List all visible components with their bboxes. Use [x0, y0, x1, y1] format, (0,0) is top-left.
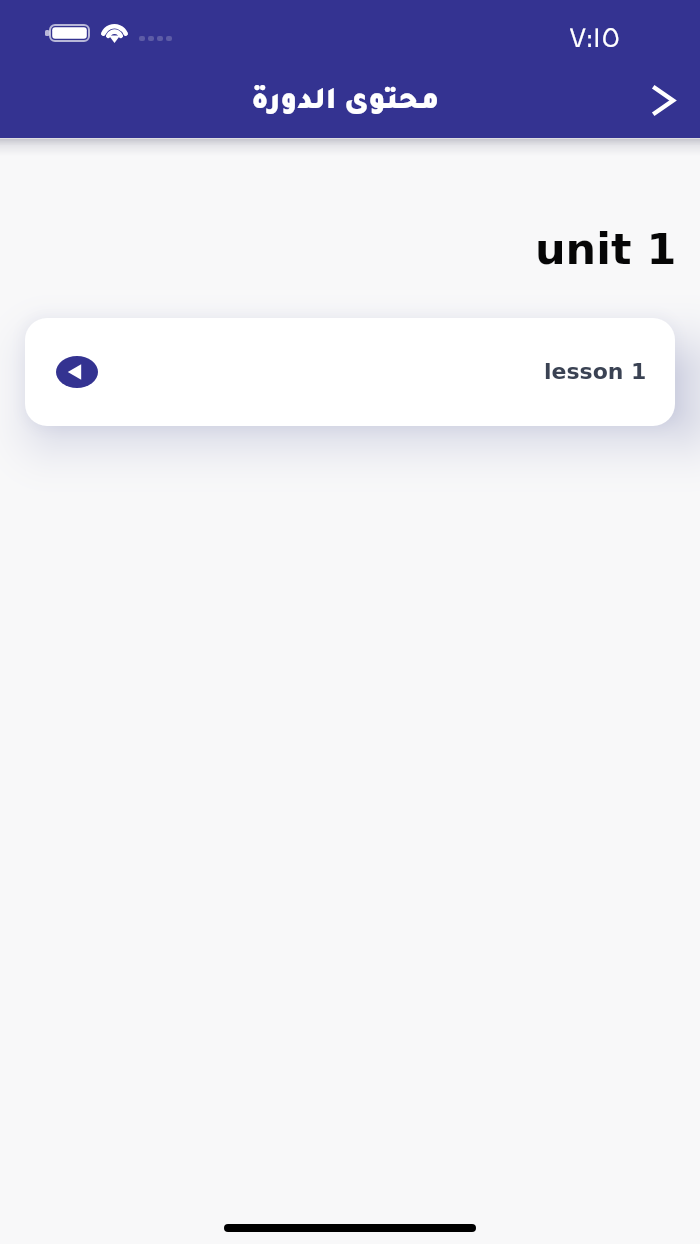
staticText: lesson 1	[544, 359, 647, 385]
staticText: unit 1	[535, 224, 677, 274]
button[interactable]: Back	[642, 78, 686, 122]
staticText: محتوى الدورة	[251, 88, 440, 119]
staticText: ٧:١٥	[569, 11, 621, 63]
button[interactable]: lesson 1	[25, 318, 675, 426]
